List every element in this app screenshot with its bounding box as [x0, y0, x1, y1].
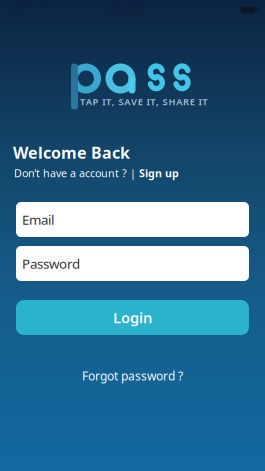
staticText: Welcome Back — [13, 142, 130, 163]
staticText: Sign up — [139, 166, 179, 180]
staticText: Don't have a account ? | — [14, 166, 136, 180]
staticText: Login — [113, 308, 152, 327]
button[interactable]: Forgot password ? — [82, 368, 183, 384]
staticText: 4:59 PM — [104, 3, 145, 17]
staticText: Forgot password ? — [82, 368, 183, 384]
button[interactable]: Sign up — [139, 166, 179, 180]
staticText: TAP IT, SAVE IT, SHARE IT — [80, 95, 207, 108]
staticText: Password — [22, 255, 80, 272]
staticText: Email — [22, 211, 54, 228]
textField[interactable]: Email — [22, 211, 249, 228]
textField[interactable]: Password — [22, 255, 249, 272]
button[interactable]: Login — [16, 300, 249, 335]
